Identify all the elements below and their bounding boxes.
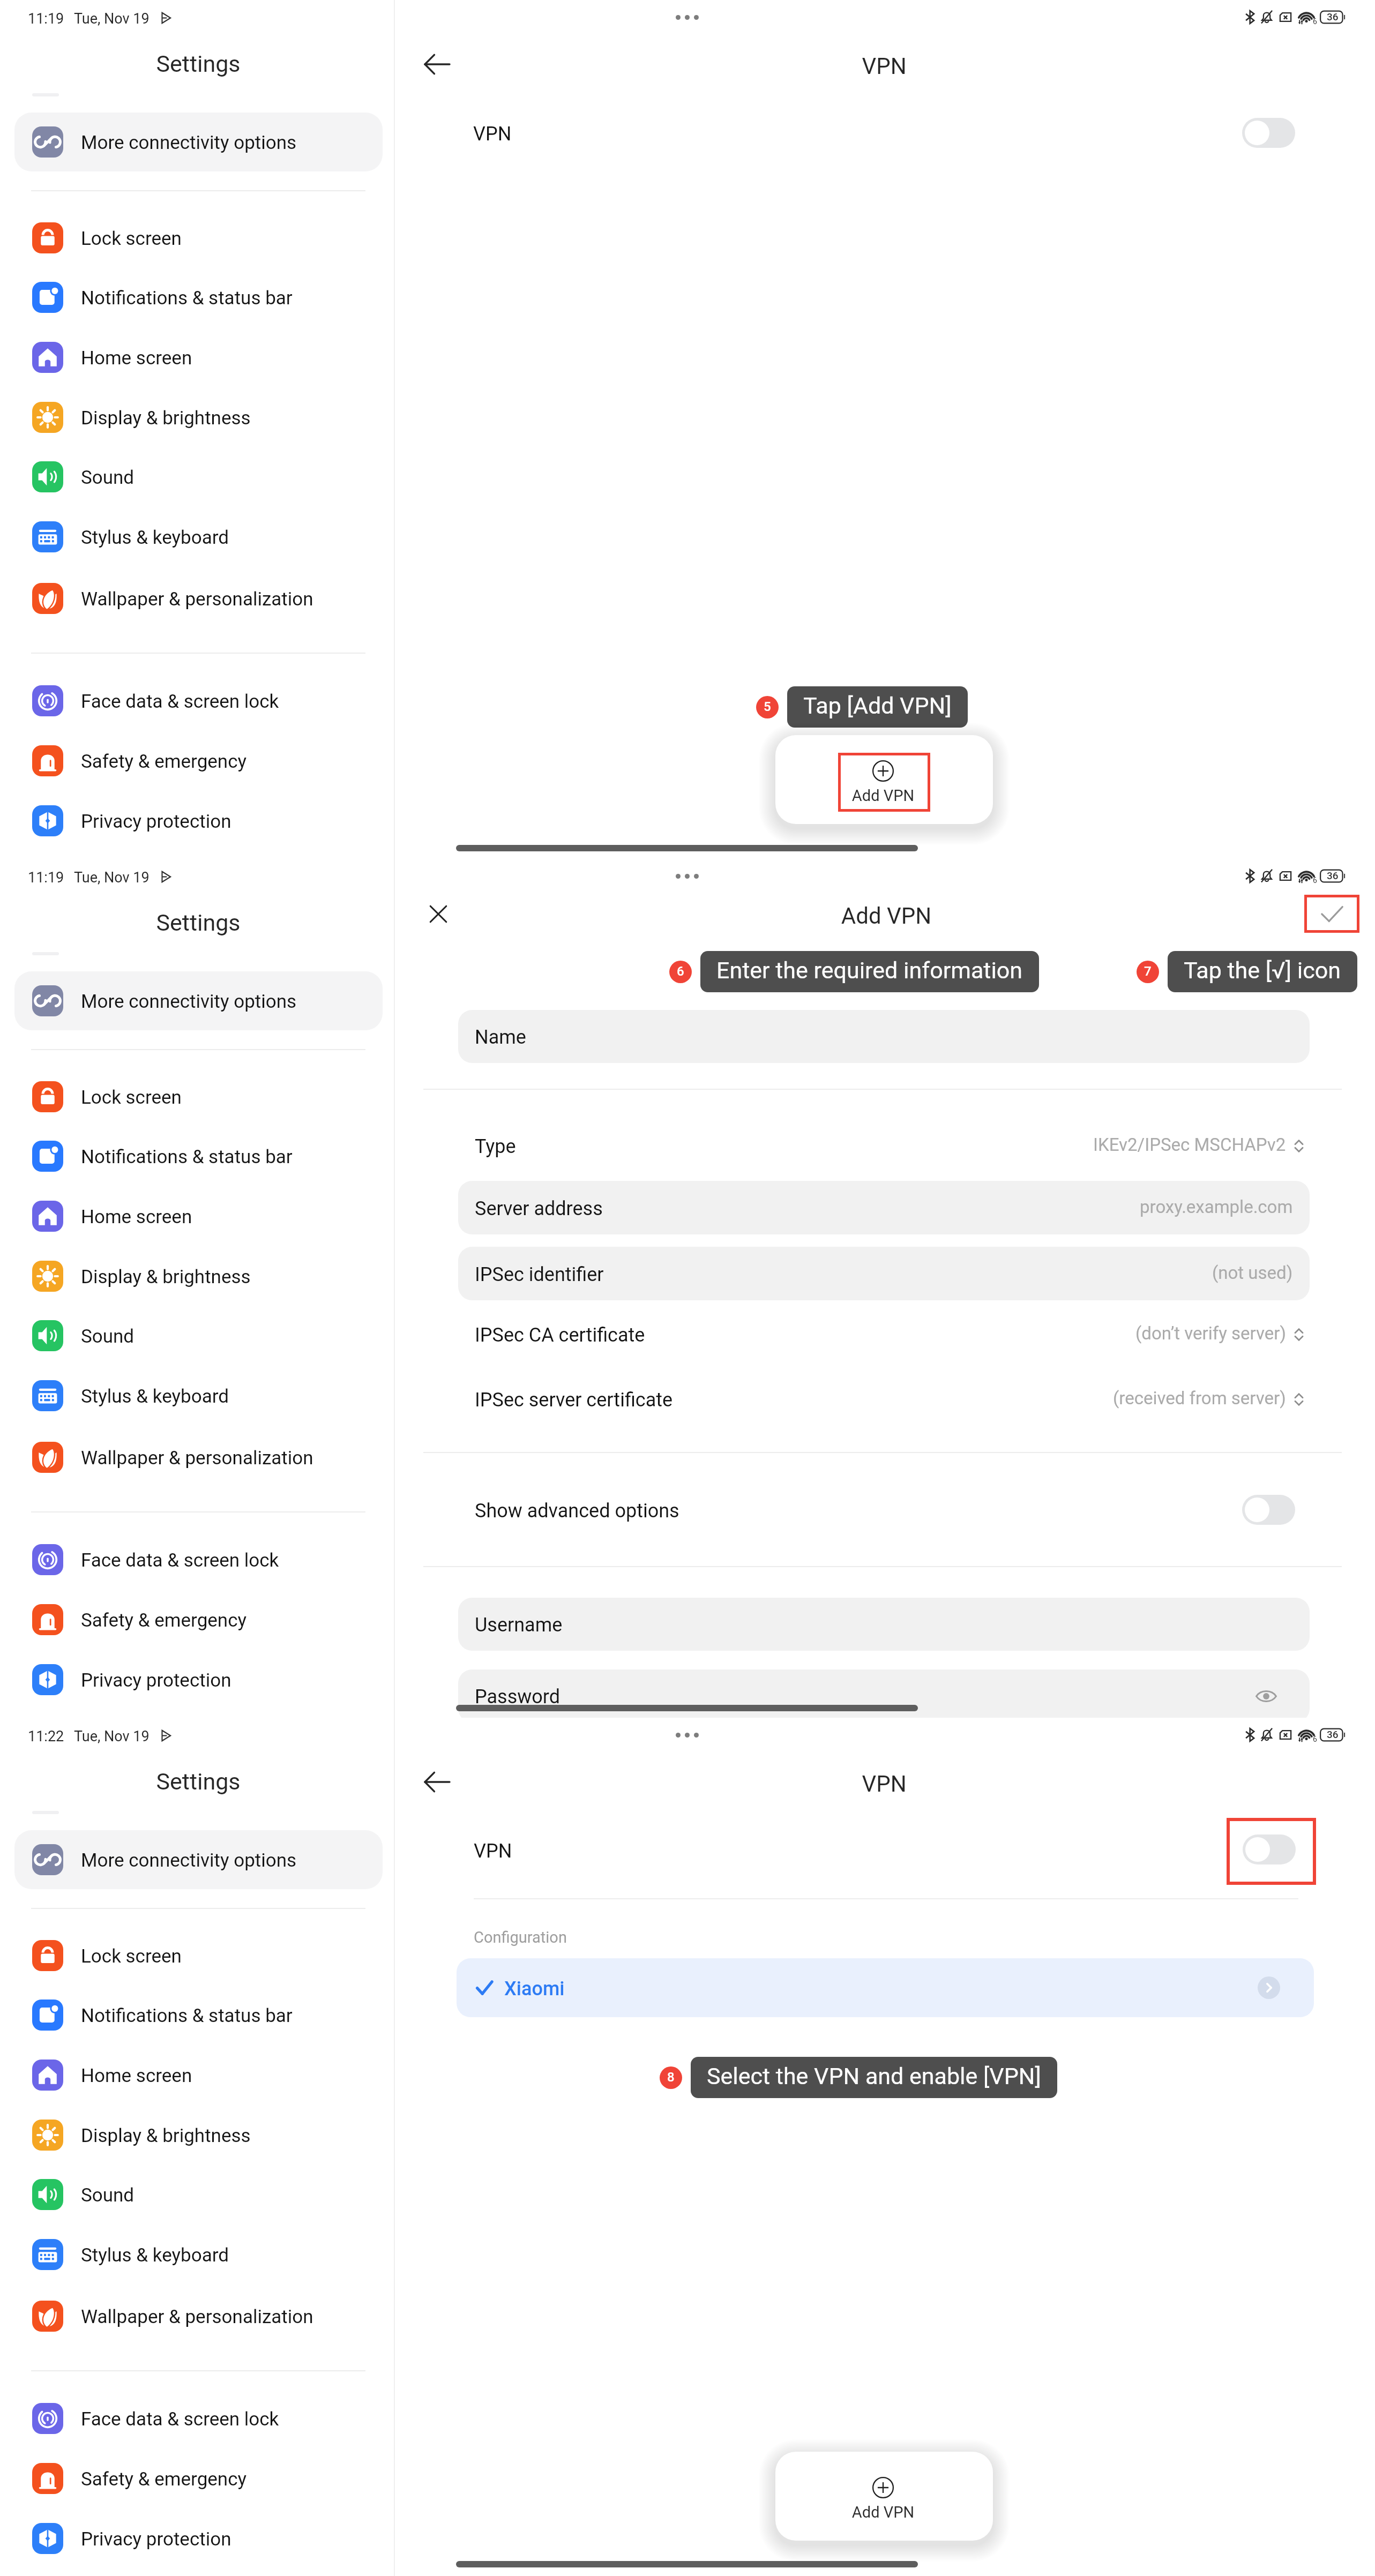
button[interactable]: Notifications & status bar	[14, 1986, 383, 2045]
button[interactable]: Confirm	[1304, 895, 1359, 933]
staticText: 7	[1144, 964, 1152, 979]
button[interactable]: Wallpaper & personalization	[14, 2287, 383, 2346]
button[interactable]: Password	[458, 1669, 1310, 1723]
button[interactable]: Safety & emergency	[14, 731, 383, 790]
button[interactable]: IPSec CA certificate	[458, 1307, 1310, 1361]
staticText: IPSec CA certificate	[475, 1324, 645, 1346]
button[interactable]: Toggle VPN	[1242, 118, 1295, 148]
staticText: More connectivity options	[81, 132, 297, 154]
staticText: Notifications & status bar	[81, 2005, 293, 2027]
button[interactable]: Server address	[458, 1181, 1310, 1234]
button[interactable]: Lock screen	[14, 208, 383, 267]
staticText: Home screen	[81, 1206, 192, 1228]
staticText: More connectivity options	[81, 991, 297, 1013]
button[interactable]: Face data & screen lock	[14, 1530, 383, 1589]
staticText: Safety & emergency	[81, 2468, 247, 2490]
button[interactable]: Add VPN	[775, 735, 993, 824]
staticText: Wallpaper & personalization	[81, 2306, 313, 2328]
button[interactable]: Face data & screen lock	[14, 2389, 383, 2448]
staticText: Face data & screen lock	[81, 691, 279, 713]
button[interactable]: Back	[418, 45, 457, 84]
button[interactable]: Notifications & status bar	[14, 1127, 383, 1186]
button[interactable]: Safety & emergency	[14, 2449, 383, 2508]
staticText: Server address	[475, 1197, 603, 1220]
staticText: IKEv2/IPSec MSCHAPv2	[1093, 1134, 1286, 1155]
button[interactable]: Stylus & keyboard	[14, 507, 383, 566]
button[interactable]: Wallpaper & personalization	[14, 569, 383, 628]
button[interactable]: Privacy protection	[14, 791, 383, 850]
button[interactable]: Type	[458, 1119, 1310, 1172]
staticText: Select the VPN and enable [VPN]	[707, 2063, 1041, 2090]
staticText: Display & brightness	[81, 2125, 251, 2147]
button[interactable]: IPSec server certificate	[458, 1372, 1310, 1426]
staticText: 6	[1313, 876, 1317, 885]
staticText: Sound	[81, 2184, 134, 2206]
button[interactable]: Safety & emergency	[14, 1590, 383, 1649]
button[interactable]: Lock screen	[14, 1067, 383, 1126]
staticText: Wallpaper & personalization	[81, 588, 313, 610]
staticText: 36	[1327, 11, 1339, 23]
staticText: Settings	[91, 909, 305, 936]
button[interactable]: Sound	[14, 2165, 383, 2224]
button[interactable]: Face data & screen lock	[14, 671, 383, 730]
button[interactable]: Home screen	[14, 2046, 383, 2105]
button[interactable]: Privacy protection	[14, 2509, 383, 2568]
staticText: (not used)	[1212, 1262, 1293, 1283]
button[interactable]: Name	[458, 1010, 1310, 1063]
staticText: Add VPN	[813, 787, 953, 805]
staticText: (don’t verify server)	[1135, 1323, 1286, 1344]
staticText: Settings	[91, 1768, 305, 1795]
staticText: VPN	[804, 1771, 965, 1797]
button[interactable]: Home screen	[14, 328, 383, 387]
button[interactable]: More connectivity options	[14, 1830, 383, 1889]
button[interactable]: IPSec identifier	[458, 1247, 1310, 1300]
staticText: 36	[1327, 1728, 1339, 1740]
staticText: Privacy protection	[81, 2528, 231, 2550]
staticText: Display & brightness	[81, 1266, 251, 1288]
staticText: 11:19	[28, 869, 64, 886]
staticText: Lock screen	[81, 1945, 182, 1967]
staticText: Tap [Add VPN]	[803, 692, 952, 719]
staticText: Username	[475, 1614, 563, 1636]
staticText: Show advanced options	[475, 1500, 679, 1522]
button[interactable]: Display & brightness	[14, 388, 383, 447]
button[interactable]: Toggle VPN	[1242, 1495, 1295, 1525]
button[interactable]: Add VPN	[775, 2452, 993, 2541]
staticText: Face data & screen lock	[81, 1549, 279, 1571]
button[interactable]: Close	[419, 895, 458, 933]
button[interactable]: Display & brightness	[14, 2106, 383, 2165]
staticText: Sound	[81, 1326, 134, 1347]
button[interactable]: Notifications & status bar	[14, 268, 383, 327]
staticText: Lock screen	[81, 228, 182, 250]
staticText: Name	[475, 1026, 526, 1049]
button[interactable]: Home screen	[14, 1187, 383, 1246]
staticText: Stylus & keyboard	[81, 1386, 229, 1407]
button[interactable]: Back	[418, 1763, 457, 1801]
button[interactable]: Toggle VPN	[1243, 1834, 1296, 1864]
staticText: Home screen	[81, 2065, 192, 2087]
button[interactable]: Sound	[14, 1306, 383, 1365]
staticText: Add VPN	[779, 903, 993, 929]
staticText: Configuration	[474, 1928, 567, 1946]
button[interactable]: Wallpaper & personalization	[14, 1428, 383, 1487]
staticText: IPSec server certificate	[475, 1389, 673, 1411]
staticText: Password	[475, 1686, 561, 1708]
staticText: 6	[1313, 1735, 1317, 1743]
staticText: Wallpaper & personalization	[81, 1447, 313, 1469]
staticText: Notifications & status bar	[81, 1146, 293, 1168]
button[interactable]: Username	[458, 1598, 1310, 1651]
button[interactable]: Lock screen	[14, 1926, 383, 1985]
button[interactable]: Privacy protection	[14, 1650, 383, 1709]
staticText: Home screen	[81, 347, 192, 369]
staticText: VPN	[804, 53, 965, 79]
staticText: Tue, Nov 19	[74, 869, 150, 886]
staticText: Settings	[91, 50, 305, 77]
button[interactable]: More connectivity options	[14, 113, 383, 171]
button[interactable]: More connectivity options	[14, 971, 383, 1030]
button[interactable]: Xiaomi	[457, 1958, 1314, 2017]
staticText: IPSec identifier	[475, 1263, 604, 1286]
button[interactable]: Display & brightness	[14, 1247, 383, 1306]
button[interactable]: Sound	[14, 447, 383, 506]
button[interactable]: Stylus & keyboard	[14, 1366, 383, 1425]
button[interactable]: Stylus & keyboard	[14, 2225, 383, 2284]
